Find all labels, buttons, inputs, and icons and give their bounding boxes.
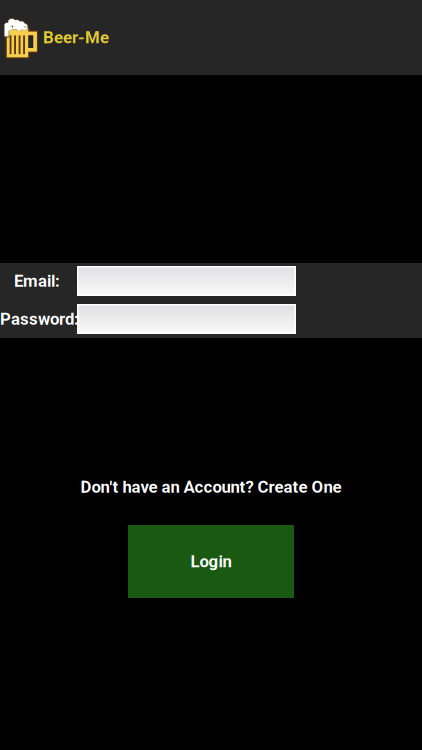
staticText: Beer-Me — [43, 28, 109, 47]
staticText: Password: — [0, 309, 79, 329]
button[interactable]: Email — [77, 266, 296, 296]
button[interactable]: Password — [77, 304, 296, 334]
staticText: Email: — [14, 271, 60, 291]
button[interactable]: Don't have an Account? Create One — [0, 477, 422, 497]
button[interactable]: Login — [128, 525, 294, 598]
staticText: Login — [190, 552, 231, 571]
staticText: Don't have an Account? Create One — [80, 477, 341, 497]
